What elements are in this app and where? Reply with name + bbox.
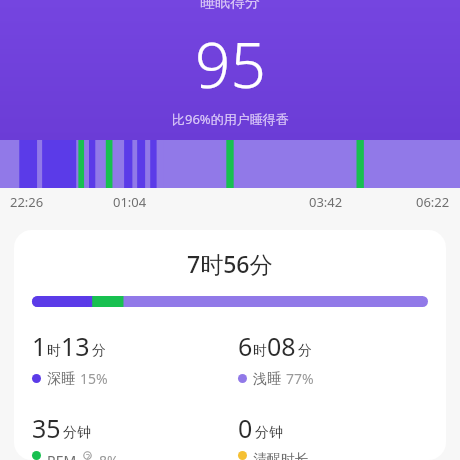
- staticText: 清醒时长: [253, 451, 309, 460]
- staticText: 分: [298, 342, 312, 360]
- staticText: 95: [195, 22, 266, 106]
- staticText: 35: [32, 411, 61, 445]
- staticText: 08: [267, 329, 296, 363]
- staticText: ?: [86, 451, 90, 460]
- button[interactable]: 1: [32, 329, 230, 388]
- staticText: 22:26: [10, 193, 44, 211]
- staticText: 6: [238, 329, 253, 363]
- staticText: 03:42: [309, 193, 343, 211]
- staticText: 15%: [80, 369, 108, 388]
- staticText: 时: [47, 342, 61, 360]
- staticText: 分钟: [255, 424, 283, 442]
- staticText: 0: [238, 411, 253, 445]
- staticText: 7时56分: [187, 248, 273, 279]
- staticText: 比96%的用户睡得香: [172, 110, 289, 128]
- staticText: 06:22: [416, 193, 450, 211]
- staticText: 01:04: [113, 193, 147, 211]
- staticText: 77%: [286, 369, 314, 388]
- staticText: 8%: [99, 451, 119, 460]
- staticText: 1: [32, 329, 47, 363]
- staticText: 分钟: [63, 424, 91, 442]
- staticText: 分: [92, 342, 106, 360]
- staticText: 13: [61, 329, 90, 363]
- button[interactable]: 35: [32, 411, 230, 460]
- button[interactable]: 6: [238, 329, 446, 388]
- staticText: REM: [47, 451, 77, 460]
- button[interactable]: 0: [238, 411, 446, 460]
- button[interactable]: About REM: [81, 451, 94, 460]
- button[interactable]: 7时56分: [14, 230, 446, 460]
- staticText: 睡眠得分: [200, 0, 260, 12]
- staticText: 时: [253, 342, 267, 360]
- staticText: 浅睡: [253, 370, 281, 388]
- staticText: 深睡: [47, 370, 75, 388]
